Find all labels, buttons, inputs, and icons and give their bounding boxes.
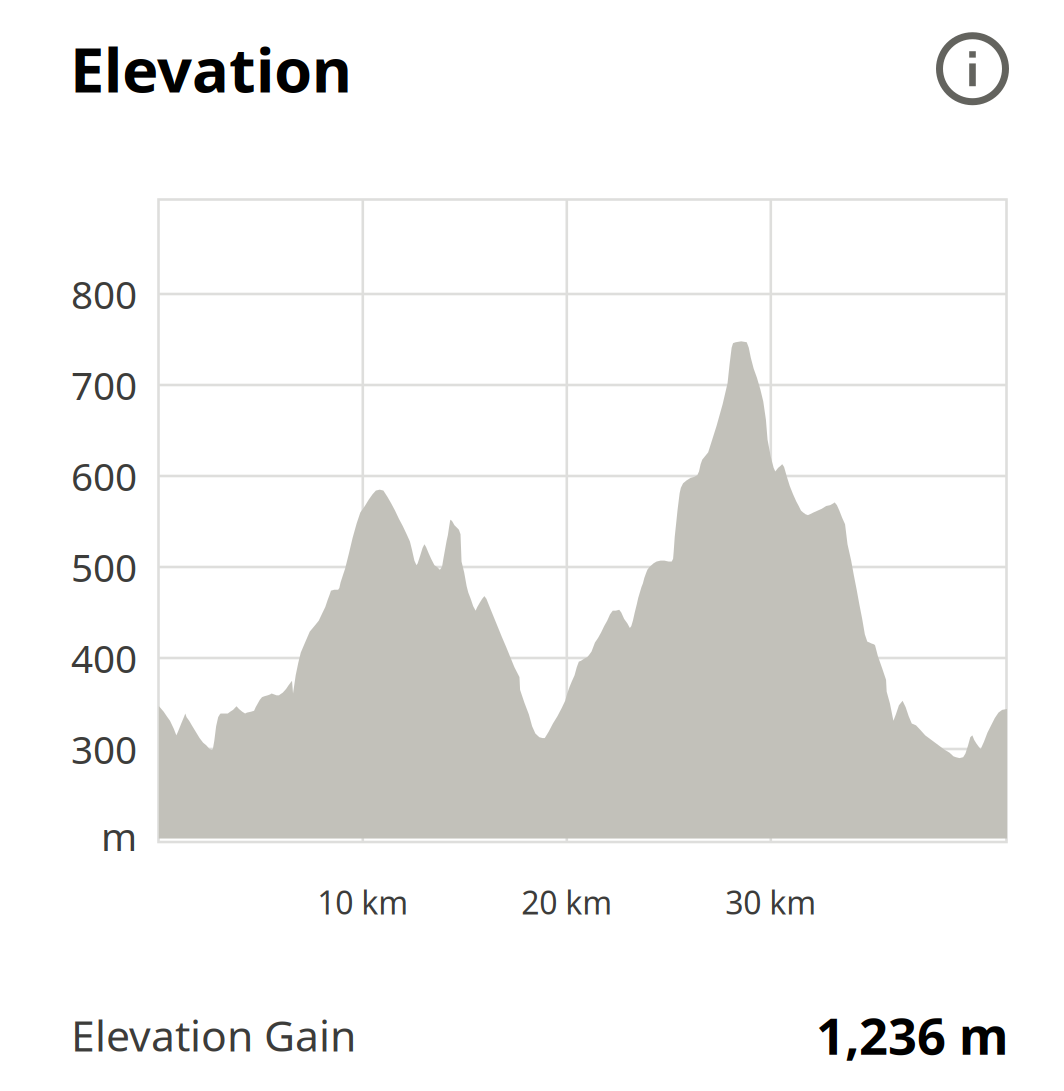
staticText: Elevation Gain [71,1007,356,1063]
staticText: 30 km [725,881,816,923]
staticText: 300 [71,723,137,775]
staticText: 500 [71,541,137,593]
staticText: 10 km [317,881,408,923]
staticText: Elevation [70,28,352,109]
staticText: 800 [71,268,137,320]
staticText: 20 km [521,881,612,923]
staticText: 400 [71,632,137,684]
button[interactable]: Information [936,32,1009,105]
staticText: m [101,810,137,862]
staticText: 700 [71,359,137,411]
staticText: 600 [71,450,137,502]
staticText: 1,236 m [816,1001,1008,1069]
